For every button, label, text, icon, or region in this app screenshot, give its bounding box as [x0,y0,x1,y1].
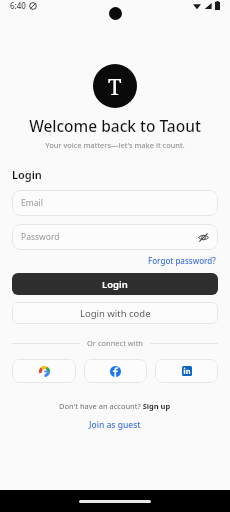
other: Show password [198,232,209,243]
button[interactable]: Sign in with LinkedIn [155,359,218,383]
button[interactable]: Password [12,224,218,250]
staticText: Login with code [80,307,151,320]
staticText: Login [102,278,128,291]
button[interactable]: Login [12,273,218,295]
staticText: Forgot password? [148,255,216,266]
button[interactable]: Don't have an account? Sign up [57,399,173,413]
staticText: Or connect with [87,338,143,348]
button[interactable]: Join as guest [87,417,143,433]
button[interactable]: Email [12,190,218,216]
staticText: Password [21,231,60,243]
staticText: T [108,71,122,101]
button[interactable]: Login with code [12,302,218,324]
staticText: Email [21,197,43,209]
button[interactable]: Sign in with Facebook [84,359,147,383]
staticText: 6:40 [10,0,26,11]
staticText: Your voice matters—let's make it count. [45,140,185,150]
staticText: Don't have an account? Sign up [59,401,171,411]
staticText: Join as guest [89,419,141,431]
button[interactable]: Sign in with Google [12,359,76,383]
staticText: Login [12,167,42,182]
button[interactable]: Forgot password? [146,254,218,267]
staticText: Welcome back to Taout [29,115,201,136]
